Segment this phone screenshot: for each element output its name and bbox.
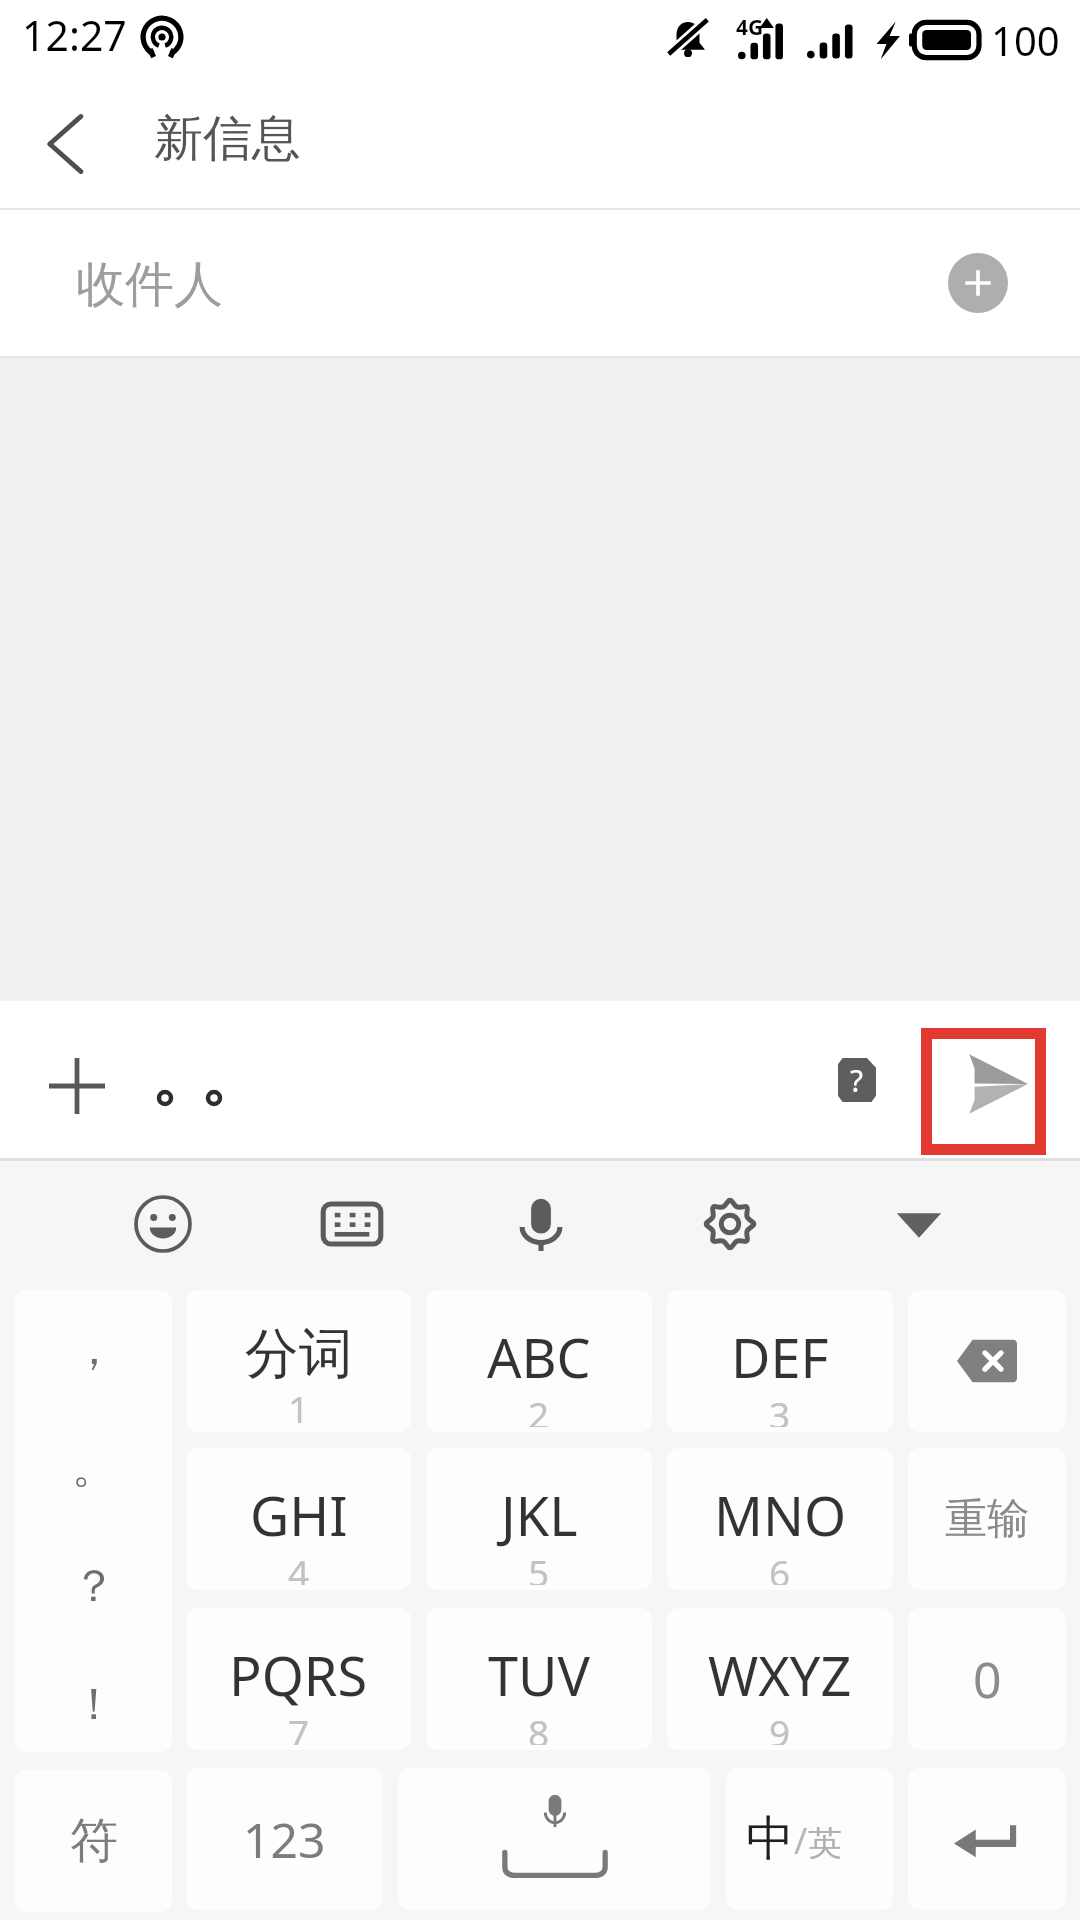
staticText: 新信息 bbox=[154, 108, 301, 170]
staticText: 123 bbox=[243, 1807, 326, 1872]
staticText: 2 bbox=[528, 1389, 550, 1427]
staticText: 符 bbox=[70, 1811, 118, 1871]
button[interactable]: Add attachment bbox=[22, 1031, 132, 1141]
staticText: PQRS bbox=[229, 1638, 368, 1712]
button[interactable] bbox=[398, 1768, 711, 1910]
button[interactable]: WXYZ bbox=[667, 1608, 893, 1750]
staticText: ！ bbox=[72, 1677, 116, 1732]
button[interactable]: Keyboard layout bbox=[287, 1161, 417, 1286]
staticText: TUV bbox=[488, 1638, 590, 1712]
button[interactable]: 符 bbox=[15, 1770, 172, 1912]
staticText: JKL bbox=[501, 1478, 578, 1552]
staticText: MNO bbox=[714, 1478, 847, 1552]
staticText: DEF bbox=[731, 1320, 829, 1394]
staticText: 4 bbox=[288, 1547, 310, 1585]
button[interactable]: Option 2 bbox=[190, 1074, 238, 1122]
staticText: 9 bbox=[769, 1707, 791, 1745]
button[interactable]: MNO bbox=[667, 1448, 893, 1590]
button[interactable]: 重输 bbox=[908, 1448, 1066, 1590]
button[interactable]: Settings bbox=[665, 1161, 795, 1286]
button[interactable]: Add recipient bbox=[948, 253, 1008, 313]
button[interactable] bbox=[908, 1768, 1066, 1910]
button[interactable]: Hide keyboard bbox=[854, 1161, 984, 1286]
button[interactable]: 中 bbox=[726, 1768, 893, 1910]
staticText: GHI bbox=[250, 1478, 348, 1552]
staticText: 。 bbox=[72, 1440, 116, 1495]
staticText: ？ bbox=[72, 1559, 116, 1614]
button[interactable]: ， bbox=[15, 1290, 172, 1752]
staticText: 3 bbox=[769, 1389, 791, 1427]
staticText: ABC bbox=[487, 1320, 591, 1394]
button[interactable]: 分词 bbox=[186, 1290, 411, 1432]
button[interactable]: Voice input bbox=[476, 1161, 606, 1286]
staticText: 中 bbox=[746, 1809, 794, 1869]
button[interactable]: Back bbox=[0, 80, 130, 208]
button[interactable]: 123 bbox=[186, 1768, 383, 1910]
button[interactable]: 0 bbox=[908, 1608, 1066, 1750]
staticText: 6 bbox=[769, 1547, 791, 1585]
button[interactable]: Emoji bbox=[98, 1161, 228, 1286]
staticText: 英 bbox=[808, 1822, 842, 1865]
staticText: 收件人 bbox=[76, 254, 223, 316]
staticText: 100 bbox=[991, 13, 1060, 67]
button[interactable]: ABC bbox=[426, 1290, 652, 1432]
staticText: ， bbox=[72, 1322, 116, 1377]
staticText: WXYZ bbox=[708, 1638, 852, 1712]
button[interactable]: DEF bbox=[667, 1290, 893, 1432]
button[interactable] bbox=[908, 1290, 1066, 1432]
button[interactable]: TUV bbox=[426, 1608, 652, 1750]
button[interactable]: PQRS bbox=[186, 1608, 411, 1750]
staticText: 12:27 bbox=[22, 7, 127, 63]
button[interactable]: Option bbox=[141, 1074, 189, 1122]
staticText: 7 bbox=[288, 1707, 310, 1745]
button[interactable]: JKL bbox=[426, 1448, 652, 1590]
staticText: 1 bbox=[288, 1383, 310, 1427]
staticText: 4G bbox=[736, 13, 764, 42]
button[interactable]: GHI bbox=[186, 1448, 411, 1590]
staticText: 重输 bbox=[945, 1493, 1029, 1546]
button[interactable]: Send bbox=[921, 1028, 1046, 1155]
staticText: 分词 bbox=[245, 1320, 353, 1388]
staticText: 5 bbox=[528, 1547, 550, 1585]
button[interactable]: Help bbox=[838, 1058, 876, 1102]
staticText: 0 bbox=[973, 1645, 1002, 1713]
staticText: / bbox=[794, 1816, 808, 1865]
staticText: 8 bbox=[528, 1707, 550, 1745]
staticText: ? bbox=[850, 1060, 864, 1101]
